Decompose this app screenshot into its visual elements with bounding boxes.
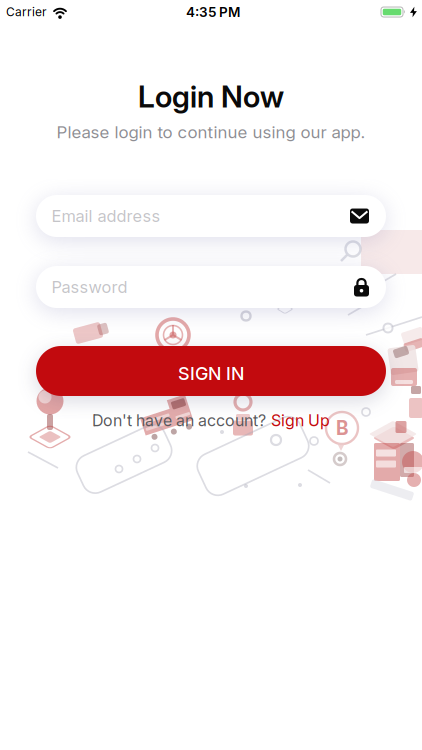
staticText: Please login to continue using our app. — [56, 122, 365, 142]
button[interactable]: Password — [36, 266, 386, 308]
button[interactable]: SIGN IN — [36, 346, 386, 396]
staticText: Sign Up — [271, 411, 330, 430]
button[interactable]: Email address — [36, 195, 386, 237]
staticText: Login Now — [138, 78, 284, 115]
staticText: B — [336, 416, 348, 439]
staticText: SIGN IN — [178, 363, 244, 384]
staticText: 4:35 PM — [186, 4, 240, 20]
staticText: Password — [51, 277, 127, 297]
button[interactable]: Sign Up — [271, 411, 330, 430]
staticText: Don't have an account? — [92, 411, 266, 430]
staticText: Carrier — [6, 5, 47, 19]
staticText: Email address — [51, 206, 160, 226]
